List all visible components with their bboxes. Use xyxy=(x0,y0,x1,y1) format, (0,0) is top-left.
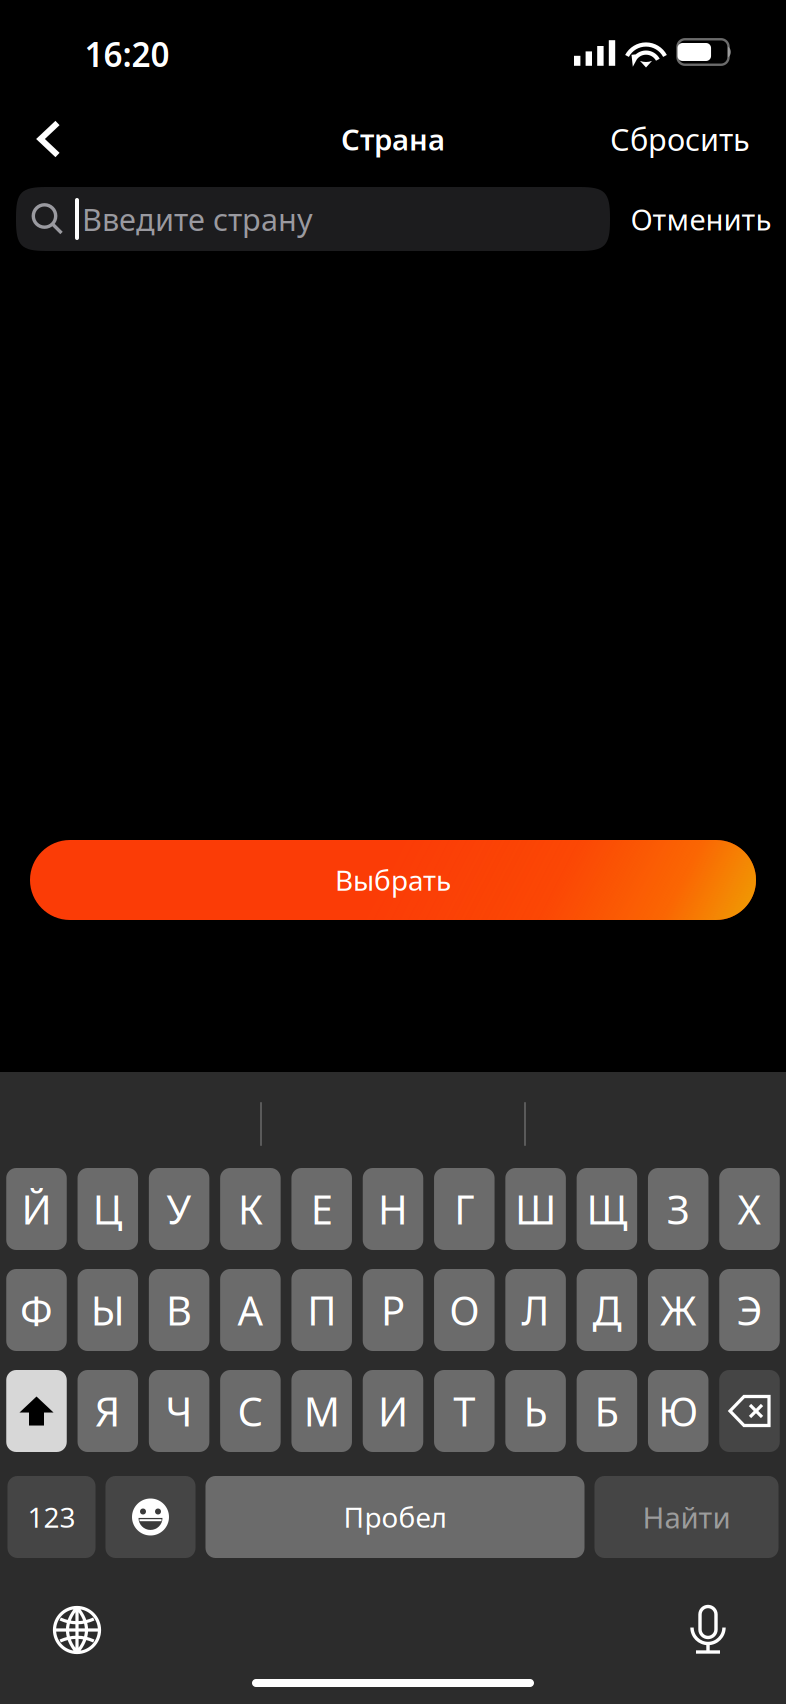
button[interactable]: Ы xyxy=(77,1269,138,1351)
staticText: Ф xyxy=(20,1283,53,1336)
button[interactable]: О xyxy=(434,1269,495,1351)
staticText: И xyxy=(378,1384,408,1437)
button[interactable]: Ц xyxy=(77,1168,138,1250)
button[interactable]: Г xyxy=(434,1168,495,1250)
button[interactable]: С xyxy=(220,1370,281,1452)
button[interactable]: У xyxy=(149,1168,209,1250)
staticText: Ь xyxy=(524,1384,548,1437)
staticText: А xyxy=(237,1283,263,1336)
button[interactable]: Ш xyxy=(505,1168,566,1250)
staticText: Ц xyxy=(93,1182,123,1235)
button[interactable]: И xyxy=(363,1370,423,1452)
button[interactable]: Н xyxy=(363,1168,423,1250)
staticText: Т xyxy=(453,1384,475,1437)
button[interactable]: Ф xyxy=(6,1269,67,1351)
button[interactable]: А xyxy=(220,1269,281,1351)
staticText: 123 xyxy=(27,1498,75,1536)
staticText: Г xyxy=(454,1182,474,1235)
staticText: Пробел xyxy=(343,1498,446,1536)
button[interactable]: В xyxy=(149,1269,209,1351)
staticText: Я xyxy=(95,1384,121,1437)
button[interactable]: 123 xyxy=(7,1476,95,1558)
staticText: Ж xyxy=(660,1283,696,1336)
button[interactable]: Р xyxy=(363,1269,423,1351)
button[interactable]: Ь xyxy=(505,1370,566,1452)
staticText: Найти xyxy=(642,1497,730,1536)
button[interactable] xyxy=(719,1370,780,1452)
staticText: Ш xyxy=(515,1182,556,1235)
button[interactable]: Я xyxy=(77,1370,138,1452)
staticText: Ы xyxy=(91,1283,125,1336)
staticText: Сбросить xyxy=(610,119,750,159)
button[interactable] xyxy=(6,1370,67,1452)
staticText: Ю xyxy=(658,1384,698,1437)
button[interactable]: Ю xyxy=(648,1370,708,1452)
button[interactable]: Сбросить xyxy=(592,105,768,173)
staticText: Й xyxy=(21,1182,51,1235)
button[interactable]: Пробел xyxy=(205,1476,584,1558)
button[interactable]: Dictation xyxy=(690,1601,726,1654)
staticText: Б xyxy=(594,1384,619,1437)
button[interactable]: Т xyxy=(434,1370,495,1452)
button[interactable]: Е xyxy=(291,1168,352,1250)
staticText: П xyxy=(307,1283,336,1336)
button[interactable]: Щ xyxy=(577,1168,637,1250)
staticText: М xyxy=(304,1384,340,1437)
staticText: С xyxy=(237,1384,263,1437)
staticText: Страна xyxy=(341,119,445,158)
staticText: Э xyxy=(736,1283,762,1336)
button[interactable]: Выбрать xyxy=(30,840,756,920)
staticText: О xyxy=(449,1283,479,1336)
staticText: Х xyxy=(737,1182,761,1235)
staticText: Е xyxy=(311,1182,333,1235)
staticText: Д xyxy=(592,1283,621,1336)
button[interactable]: Next keyboard xyxy=(53,1606,101,1654)
staticText: Н xyxy=(378,1182,408,1235)
button[interactable]: Д xyxy=(577,1269,637,1351)
staticText: В xyxy=(166,1283,192,1336)
staticText: Р xyxy=(381,1283,405,1336)
staticText: К xyxy=(238,1182,263,1235)
button[interactable]: Введите страну xyxy=(16,187,610,251)
button[interactable]: Найти xyxy=(594,1476,778,1558)
staticText: Введите страну xyxy=(82,199,313,239)
staticText: Отменить xyxy=(630,199,771,238)
staticText: Л xyxy=(522,1283,550,1336)
staticText: 16:20 xyxy=(84,32,169,76)
button[interactable]: М xyxy=(291,1370,352,1452)
button[interactable]: Л xyxy=(505,1269,566,1351)
button[interactable] xyxy=(105,1476,195,1558)
button[interactable]: Х xyxy=(719,1168,780,1250)
button[interactable]: Э xyxy=(719,1269,780,1351)
staticText: Ч xyxy=(166,1384,193,1437)
button[interactable]: П xyxy=(291,1269,352,1351)
staticText: Щ xyxy=(586,1182,627,1235)
button[interactable]: Б xyxy=(577,1370,637,1452)
button[interactable]: К xyxy=(220,1168,281,1250)
button[interactable]: Й xyxy=(6,1168,67,1250)
button[interactable]: Ч xyxy=(149,1370,209,1452)
staticText: Выбрать xyxy=(335,861,451,899)
button[interactable]: Back xyxy=(11,102,86,176)
button[interactable]: Отменить xyxy=(616,187,785,250)
staticText: У xyxy=(167,1182,192,1235)
staticText: З xyxy=(667,1182,690,1235)
button[interactable]: Ж xyxy=(648,1269,708,1351)
button[interactable]: З xyxy=(648,1168,708,1250)
